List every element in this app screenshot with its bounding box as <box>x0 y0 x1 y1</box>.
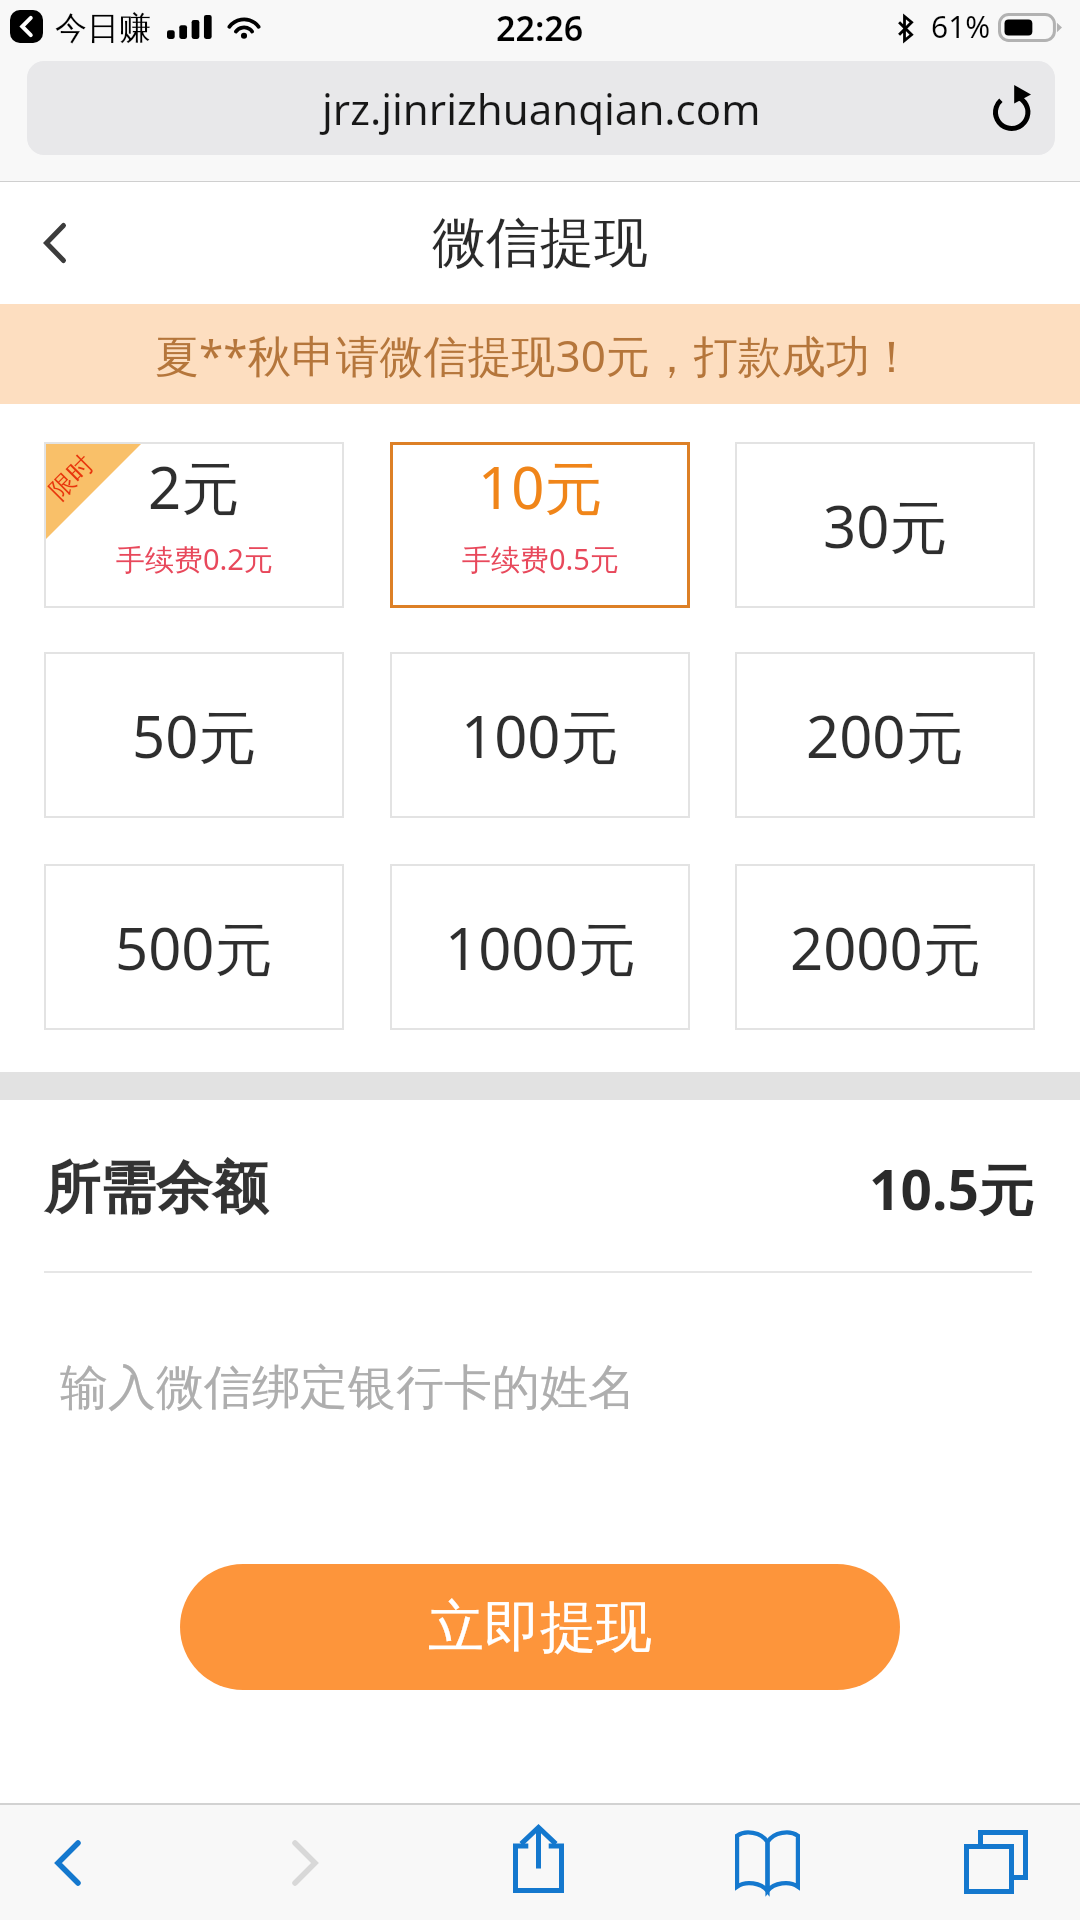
staticText: 所需余额 <box>44 1153 268 1224</box>
button[interactable]: 1000元 <box>390 864 690 1030</box>
button[interactable]: jrz.jinrizhuanqian.com <box>27 61 1055 155</box>
button[interactable]: Back <box>13 1805 123 1920</box>
staticText: 61% <box>931 6 991 47</box>
staticText: 限时 <box>43 449 100 506</box>
button[interactable]: 输入微信绑定银行卡的姓名 <box>60 1288 1080 1488</box>
button[interactable]: 立即提现 <box>180 1564 900 1690</box>
button[interactable]: 所需余额 <box>44 1104 1034 1272</box>
staticText: 手续费0.5元 <box>462 539 619 579</box>
button[interactable]: 30元 <box>735 442 1035 608</box>
button[interactable]: 200元 <box>735 652 1035 818</box>
button[interactable]: 50元 <box>44 652 344 818</box>
button[interactable]: Share <box>483 1805 593 1920</box>
staticText: 立即提现 <box>428 1592 652 1663</box>
button[interactable]: Tabs <box>941 1805 1051 1920</box>
button[interactable]: Reload <box>985 81 1039 135</box>
staticText: 30元 <box>823 486 948 565</box>
staticText: 22:26 <box>496 5 584 51</box>
button[interactable]: Bookmarks <box>712 1805 822 1920</box>
button[interactable]: 100元 <box>390 652 690 818</box>
button[interactable]: Back <box>22 210 88 276</box>
staticText: 2000元 <box>790 908 981 987</box>
staticText: 10.5元 <box>869 1151 1034 1226</box>
staticText: 50元 <box>132 696 257 775</box>
button[interactable]: 限时 <box>44 442 344 608</box>
staticText: 2元 <box>148 447 240 526</box>
staticText: 手续费0.2元 <box>116 539 273 579</box>
staticText: 夏**秋申请微信提现30元，打款成功！ <box>155 325 914 385</box>
staticText: 微信提现 <box>432 209 648 277</box>
button[interactable]: 2000元 <box>735 864 1035 1030</box>
staticText: 输入微信绑定银行卡的姓名 <box>60 1358 636 1418</box>
button[interactable]: Forward <box>250 1805 360 1920</box>
staticText: jrz.jinrizhuanqian.com <box>322 80 761 137</box>
staticText: 10元 <box>478 447 603 526</box>
staticText: 500元 <box>115 908 273 987</box>
button[interactable]: 10元 <box>390 442 690 608</box>
staticText: 200元 <box>806 696 964 775</box>
staticText: 今日赚 <box>55 8 151 48</box>
staticText: 1000元 <box>445 908 636 987</box>
staticText: 100元 <box>461 696 619 775</box>
button[interactable]: 500元 <box>44 864 344 1030</box>
